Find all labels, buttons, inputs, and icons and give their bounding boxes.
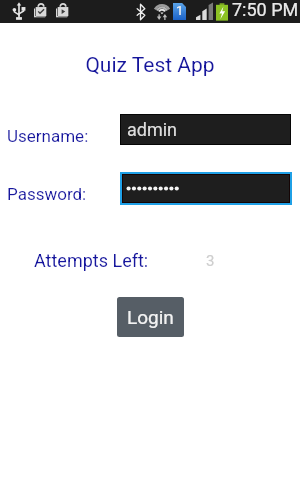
staticText: Attempts Left: (34, 250, 149, 271)
staticText: 3 (206, 252, 215, 270)
other: SIM 1 (173, 3, 186, 20)
staticText: admin (127, 119, 178, 140)
button[interactable]: Login (117, 297, 184, 337)
other: Wi-Fi connected (154, 1, 170, 20)
staticText: 7:50 PM (232, 0, 299, 20)
other: USB connected (12, 2, 26, 20)
other: Battery charging (216, 3, 228, 21)
other: Play Store (56, 2, 70, 20)
button[interactable] (123, 175, 289, 202)
button[interactable]: admin (121, 115, 290, 144)
other: Bluetooth on (136, 4, 146, 20)
staticText: Username: (7, 126, 89, 146)
staticText: Quiz Test App (0, 53, 300, 78)
staticText: Login (127, 306, 174, 328)
staticText: Password: (7, 184, 87, 204)
other: Signal strength (196, 5, 213, 20)
other: App installed (34, 2, 48, 20)
staticText: 1 (176, 3, 184, 18)
